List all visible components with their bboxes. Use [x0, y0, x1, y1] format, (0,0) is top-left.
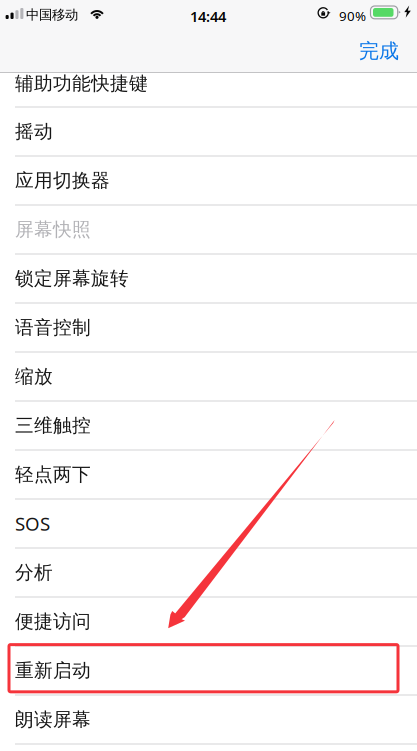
- staticText: 语音控制: [15, 316, 91, 339]
- staticText: 应用切换器: [15, 169, 110, 192]
- button[interactable]: 摇动: [0, 107, 417, 156]
- staticText: 分析: [15, 561, 53, 584]
- staticText: 重新启动: [15, 659, 91, 682]
- staticText: 缩放: [15, 365, 53, 388]
- button[interactable]: 重新启动: [0, 646, 417, 695]
- staticText: 摇动: [15, 120, 53, 143]
- staticText: 三维触控: [15, 414, 91, 437]
- button[interactable]: 语音控制: [0, 303, 417, 352]
- button[interactable]: 朗读屏幕: [0, 695, 417, 744]
- button[interactable]: 屏幕快照: [0, 205, 417, 254]
- button[interactable]: 缩放: [0, 352, 417, 401]
- staticText: 14:44: [190, 6, 226, 26]
- staticText: 90%: [339, 7, 366, 25]
- button[interactable]: 分析: [0, 548, 417, 597]
- button[interactable]: 完成: [341, 29, 417, 73]
- staticText: 中国移动: [26, 6, 78, 23]
- staticText: 完成: [359, 39, 399, 63]
- button[interactable]: 三维触控: [0, 401, 417, 450]
- staticText: 辅助功能快捷键: [15, 72, 148, 95]
- staticText: 屏幕快照: [15, 218, 91, 241]
- staticText: 轻点两下: [15, 463, 91, 486]
- button[interactable]: 便捷访问: [0, 597, 417, 646]
- staticText: 锁定屏幕旋转: [15, 267, 129, 290]
- button[interactable]: SOS: [0, 499, 417, 548]
- staticText: 朗读屏幕: [15, 708, 91, 731]
- button[interactable]: 轻点两下: [0, 450, 417, 499]
- staticText: SOS: [15, 511, 50, 536]
- button[interactable]: 锁定屏幕旋转: [0, 254, 417, 303]
- staticText: 便捷访问: [15, 610, 91, 633]
- button[interactable]: 应用切换器: [0, 156, 417, 205]
- button[interactable]: 辅助功能快捷键: [0, 72, 417, 107]
